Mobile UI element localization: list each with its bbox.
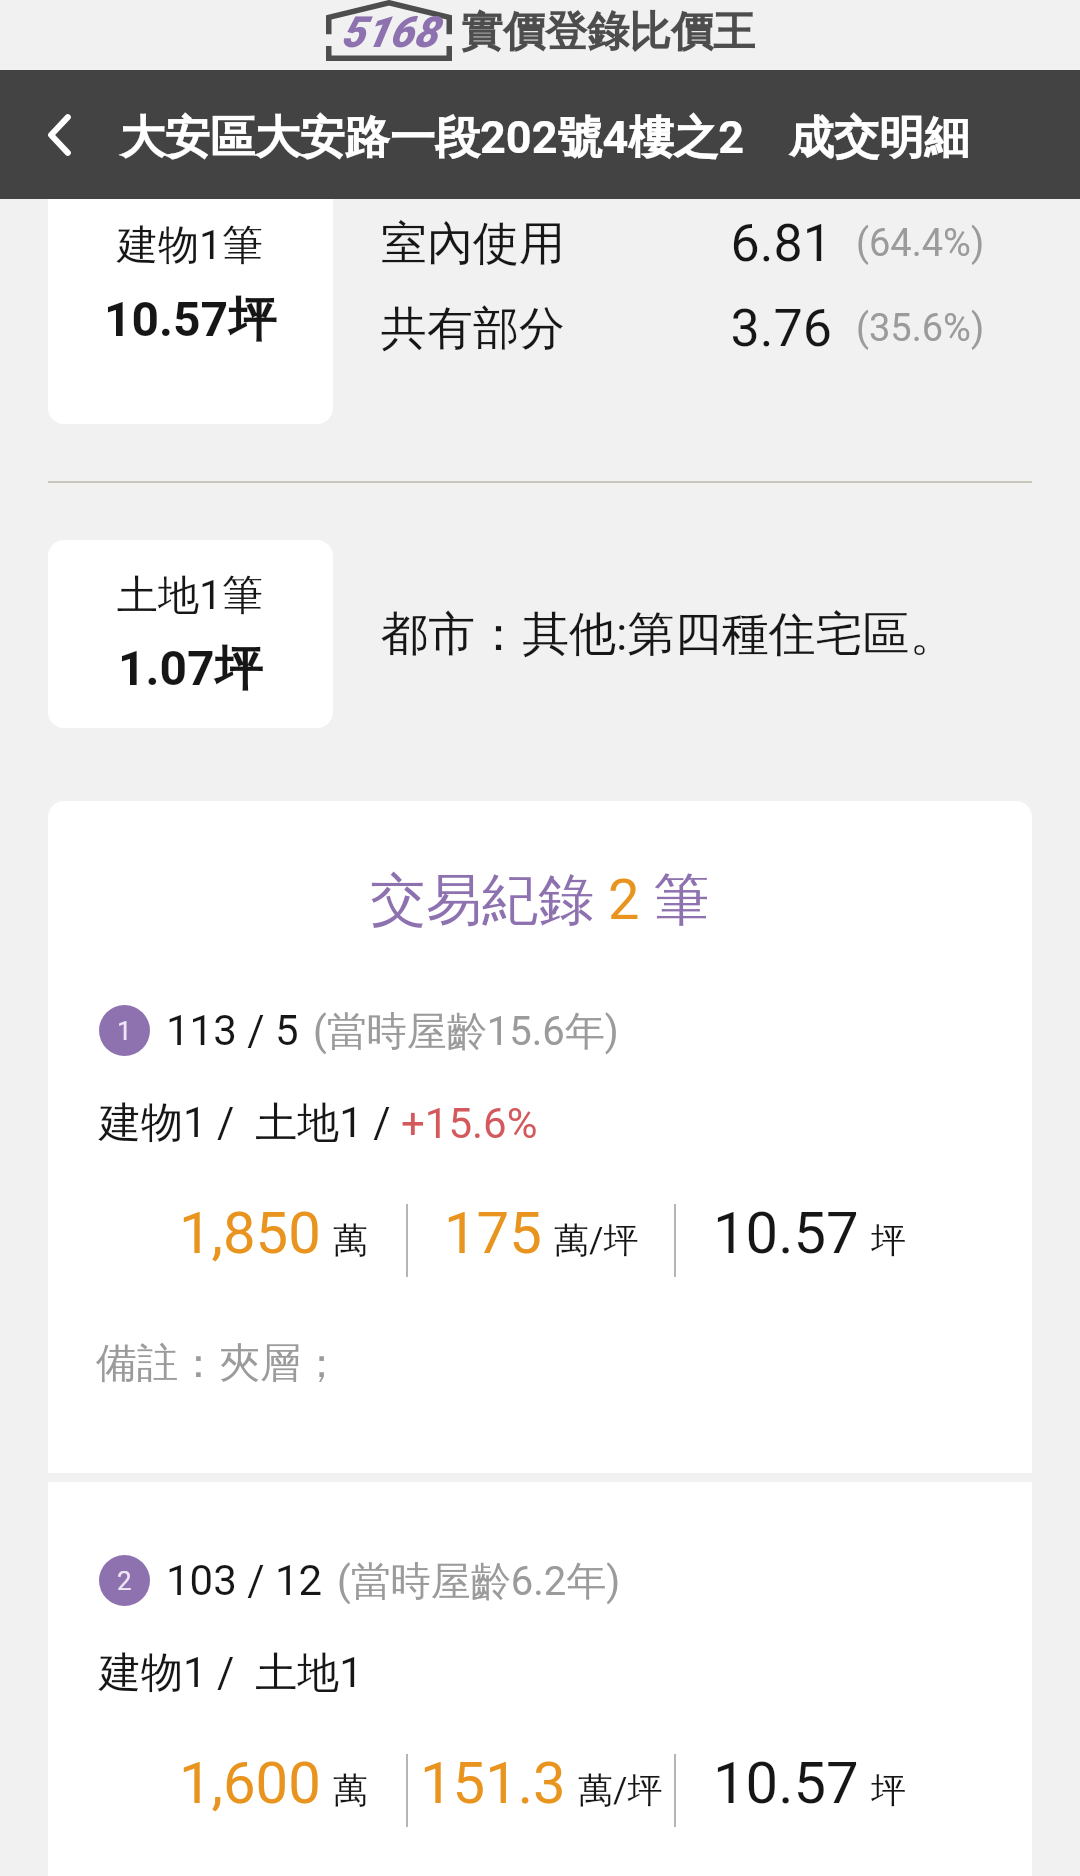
- staticText: 10.57: [713, 1749, 859, 1817]
- staticText: (35.6%): [856, 306, 985, 351]
- staticText: 建物1 / 土地1 /: [99, 1097, 401, 1150]
- staticText: 都市：其他:第四種住宅區。: [381, 605, 957, 664]
- staticText: 151.3: [420, 1749, 566, 1817]
- staticText: 1,600: [179, 1749, 321, 1817]
- staticText: 交易紀錄 2 筆: [370, 865, 710, 936]
- staticText: 175: [444, 1199, 542, 1267]
- staticText: 實價登錄比價王: [461, 6, 755, 59]
- staticText: 室內使用: [381, 215, 565, 273]
- staticText: 備註：夾層；: [96, 1338, 342, 1390]
- staticText: 建物1筆: [117, 220, 264, 272]
- staticText: 萬: [333, 1218, 368, 1262]
- staticText: 萬: [333, 1768, 368, 1812]
- staticText: +15.6%: [401, 1099, 538, 1148]
- staticText: 1,850: [179, 1199, 321, 1267]
- staticText: 1.07坪: [118, 639, 263, 699]
- staticText: 10.57坪: [104, 290, 277, 350]
- staticText: 萬/坪: [578, 1768, 663, 1812]
- staticText: 土地1筆: [117, 570, 264, 622]
- staticText: 坪: [871, 1218, 906, 1262]
- button[interactable]: Back: [0, 70, 1080, 199]
- staticText: 10.57: [713, 1199, 859, 1267]
- staticText: 萬/坪: [554, 1218, 639, 1262]
- staticText: 坪: [871, 1768, 906, 1812]
- staticText: (64.4%): [856, 221, 985, 266]
- staticText: 103 / 12: [166, 1556, 323, 1605]
- button[interactable]: Back: [0, 70, 120, 199]
- staticText: (當時屋齡15.6年): [313, 1006, 619, 1056]
- staticText: 建物1 / 土地1: [99, 1647, 363, 1700]
- staticText: (當時屋齡6.2年): [337, 1556, 621, 1606]
- staticText: 1: [117, 1016, 132, 1046]
- staticText: 3.76: [673, 298, 832, 359]
- staticText: 113 / 5: [166, 1006, 299, 1055]
- staticText: 大安區大安路一段202號4樓之2 成交明細: [120, 110, 970, 167]
- staticText: 5168: [341, 7, 438, 57]
- staticText: 共有部分: [381, 300, 565, 358]
- staticText: 6.81: [673, 213, 832, 274]
- staticText: 2: [117, 1566, 132, 1596]
